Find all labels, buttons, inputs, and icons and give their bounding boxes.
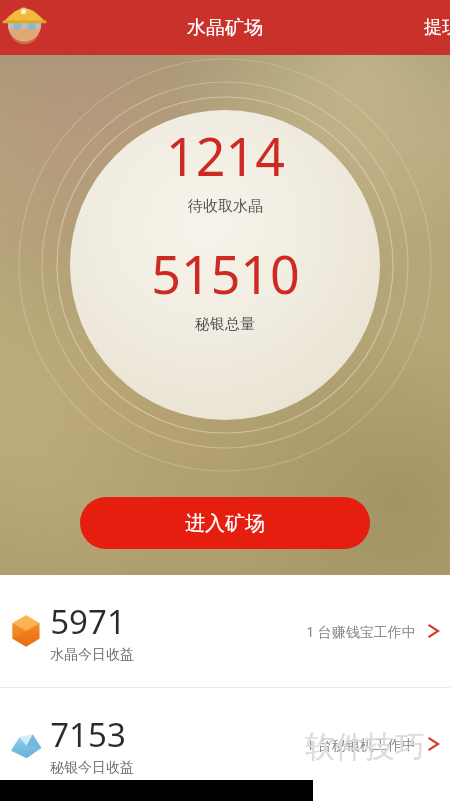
staticText: 1 台秘银机工作中	[306, 735, 416, 754]
button[interactable]: 5971	[0, 575, 450, 687]
staticText: 秘银总量	[195, 315, 255, 334]
staticText: 秘银今日收益	[50, 759, 134, 777]
staticText: 1 台赚钱宝工作中	[306, 622, 416, 641]
button[interactable]: 7153	[0, 688, 450, 800]
staticText: 软件技巧	[305, 728, 425, 766]
button[interactable]: Profile	[2, 0, 52, 46]
staticText: 5971	[50, 599, 126, 644]
staticText: 水晶矿场	[187, 16, 263, 40]
staticText: 待收取水晶	[188, 197, 263, 216]
staticText: 进入矿场	[185, 511, 265, 536]
staticText: 51510	[151, 238, 300, 309]
button[interactable]: 提现	[416, 16, 450, 39]
button[interactable]: 进入矿场	[80, 497, 370, 549]
staticText: 7153	[50, 712, 126, 757]
staticText: 提现	[424, 16, 450, 39]
staticText: 水晶今日收益	[50, 646, 134, 664]
staticText: 1214	[166, 120, 285, 191]
